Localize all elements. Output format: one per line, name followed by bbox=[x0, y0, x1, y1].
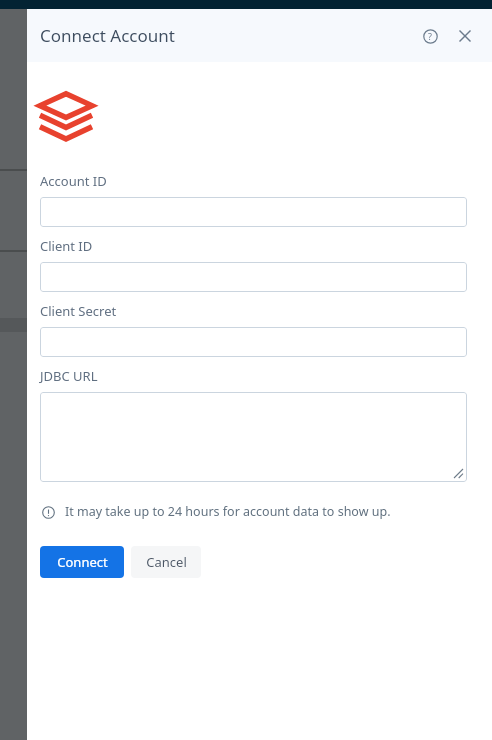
staticText: Connect Account bbox=[40, 24, 175, 47]
staticText: JDBC URL bbox=[40, 367, 98, 385]
staticText: Account ID bbox=[40, 172, 107, 190]
staticText: Cancel bbox=[146, 553, 187, 571]
button[interactable]: Cancel bbox=[131, 546, 201, 578]
staticText: Client Secret bbox=[40, 302, 117, 320]
staticText: Connect bbox=[57, 553, 108, 571]
button[interactable] bbox=[40, 392, 467, 482]
staticText: Client ID bbox=[40, 237, 93, 255]
staticText: It may take up to 24 hours for account d… bbox=[65, 503, 391, 520]
button[interactable]: Close bbox=[452, 23, 478, 49]
button[interactable]: Help bbox=[417, 23, 443, 49]
button[interactable] bbox=[40, 197, 467, 227]
button[interactable] bbox=[40, 327, 467, 357]
button[interactable] bbox=[40, 262, 467, 292]
button[interactable]: Connect bbox=[40, 546, 124, 578]
staticText: ? bbox=[428, 30, 432, 42]
